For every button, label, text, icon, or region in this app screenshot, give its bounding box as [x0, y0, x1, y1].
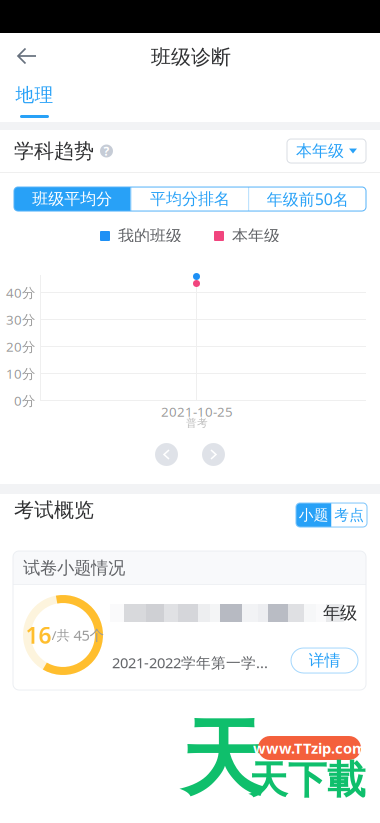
staticText: 学科趋势	[14, 139, 94, 163]
staticText: 试卷小题情况	[23, 557, 125, 579]
staticText: 20分	[6, 338, 35, 355]
staticText: 我的班级	[118, 226, 182, 246]
staticText: 地理	[15, 83, 53, 106]
staticText: 普考	[186, 416, 208, 429]
staticText: 0分	[14, 392, 35, 409]
button[interactable]: 班级平均分	[14, 187, 131, 211]
staticText: 详情	[308, 651, 340, 670]
button[interactable]: Back	[1, 35, 53, 77]
staticText: 考点	[334, 506, 364, 524]
button[interactable]: 平均分排名	[132, 187, 248, 211]
staticText: 40分	[6, 284, 35, 301]
staticText: 10分	[6, 365, 35, 382]
button[interactable]: 详情	[291, 648, 358, 673]
staticText: 年级	[323, 602, 357, 624]
staticText: 平均分排名	[150, 189, 230, 209]
button[interactable]: 本年级	[287, 139, 366, 163]
button[interactable]: 考点	[331, 503, 367, 527]
staticText: 小题	[299, 506, 329, 524]
staticText: 班级诊断	[151, 45, 231, 69]
staticText: 16	[25, 620, 51, 650]
staticText: 年级前50名	[267, 188, 349, 210]
staticText: 天下載	[249, 756, 366, 804]
staticText: 2021-2022学年第一学期七...	[112, 653, 282, 672]
button[interactable]: 地理	[0, 75, 69, 122]
staticText: 2021-10-25	[161, 403, 233, 420]
staticText: 天	[181, 707, 265, 811]
staticText: 30分	[6, 311, 35, 328]
staticText: 班级平均分	[32, 189, 112, 209]
button[interactable]: 小题	[296, 503, 331, 527]
staticText: 本年级	[296, 141, 344, 161]
button[interactable]: Next period	[202, 443, 225, 466]
button[interactable]: 年级前50名	[249, 187, 366, 211]
button[interactable]: Previous period	[155, 443, 178, 466]
staticText: ?	[103, 143, 109, 159]
staticText: www.TTzip.com	[253, 738, 366, 758]
staticText: 本年级	[232, 226, 280, 246]
staticText: 考试概览	[14, 498, 94, 522]
staticText: /共	[51, 626, 69, 644]
staticText: 45个	[69, 625, 104, 645]
